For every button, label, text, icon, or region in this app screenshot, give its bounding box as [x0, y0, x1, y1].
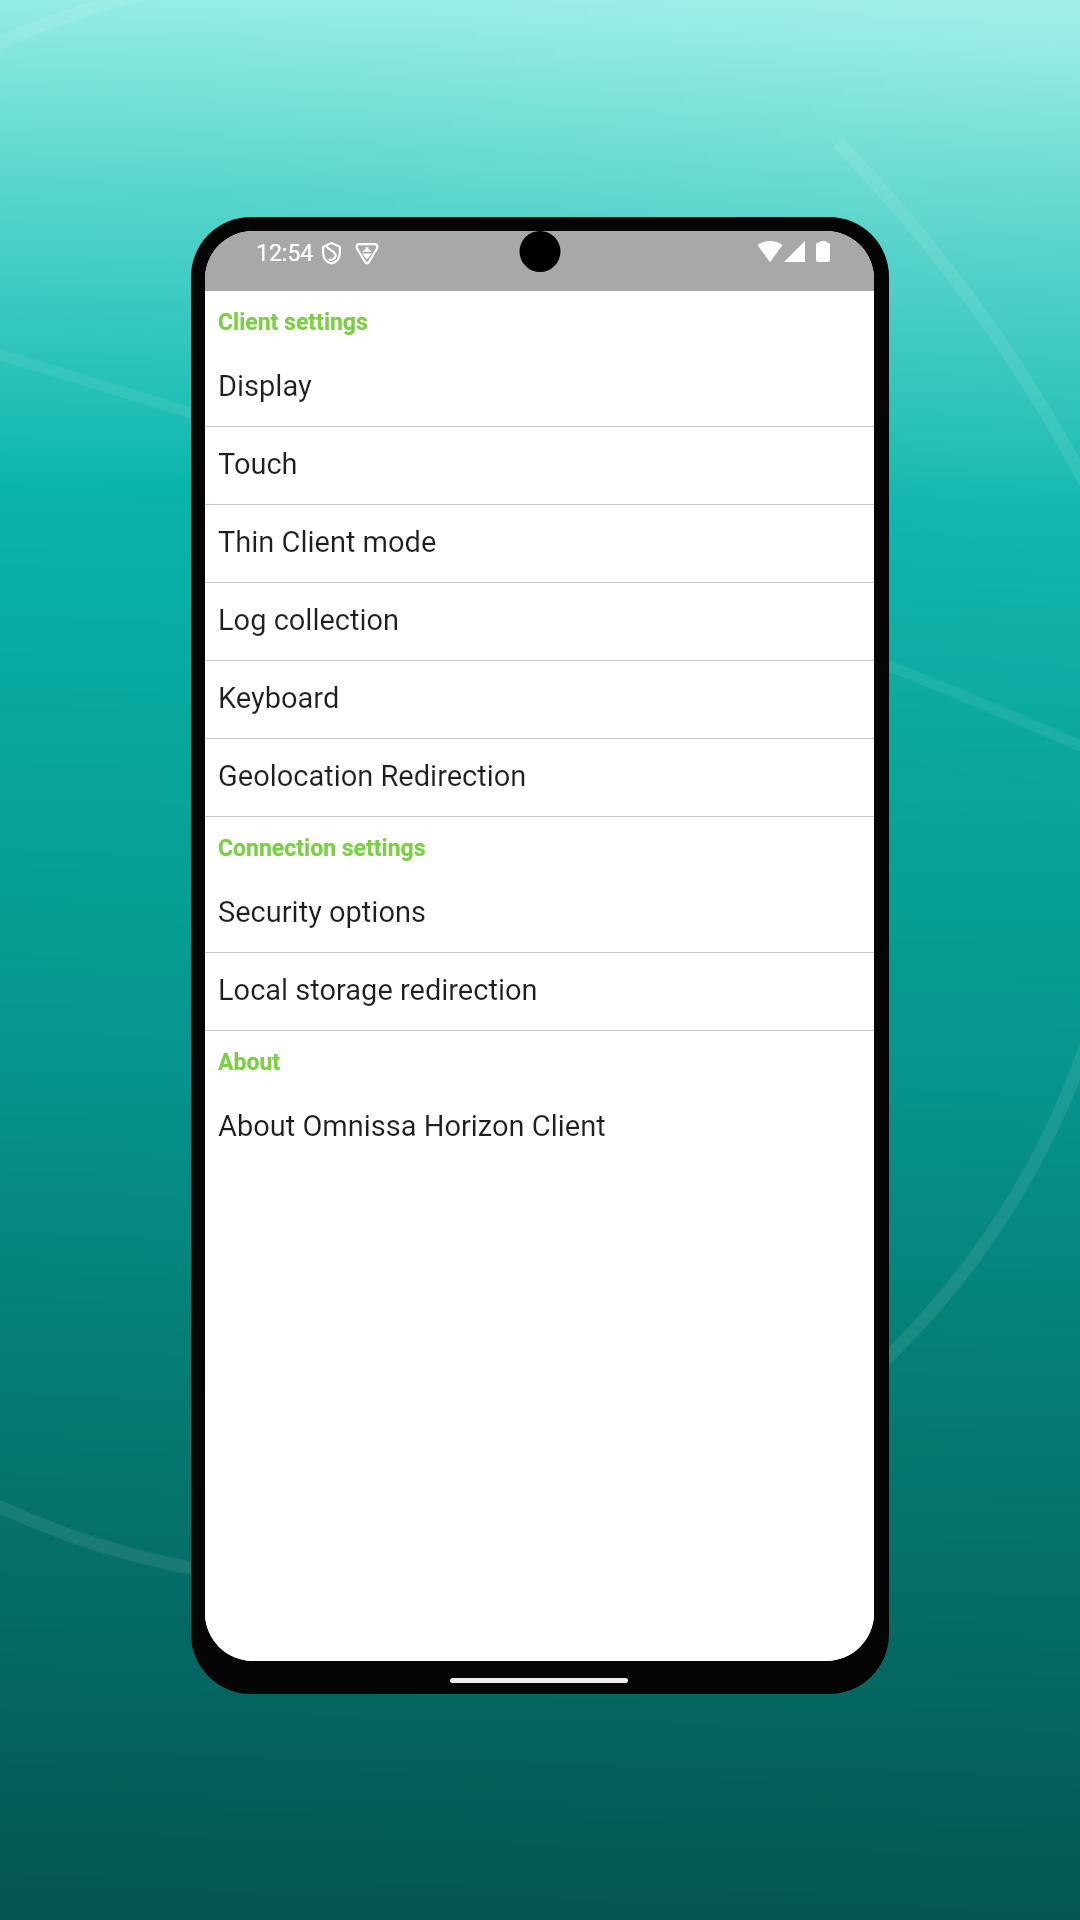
button[interactable]: About Omnissa Horizon Client: [205, 1089, 874, 1166]
staticText: Thin Client mode: [218, 525, 437, 559]
button[interactable]: Log collection: [205, 583, 874, 660]
button[interactable]: Keyboard: [205, 661, 874, 738]
button[interactable]: Thin Client mode: [205, 505, 874, 582]
staticText: Touch: [218, 447, 298, 481]
button[interactable]: Geolocation Redirection: [205, 739, 874, 816]
staticText: Log collection: [218, 603, 400, 637]
button[interactable]: Security options: [205, 875, 874, 952]
staticText: About: [218, 1049, 281, 1076]
button[interactable]: Local storage redirection: [205, 953, 874, 1030]
staticText: 12:54: [256, 240, 314, 267]
staticText: Display: [218, 369, 312, 403]
staticText: Client settings: [218, 309, 368, 336]
staticText: About Omnissa Horizon Client: [218, 1109, 606, 1143]
staticText: Security options: [218, 895, 426, 929]
staticText: Connection settings: [218, 835, 426, 862]
staticText: Keyboard: [218, 681, 340, 715]
staticText: Local storage redirection: [218, 973, 538, 1007]
staticText: Geolocation Redirection: [218, 759, 527, 793]
button[interactable]: Display: [205, 349, 874, 426]
button[interactable]: Touch: [205, 427, 874, 504]
